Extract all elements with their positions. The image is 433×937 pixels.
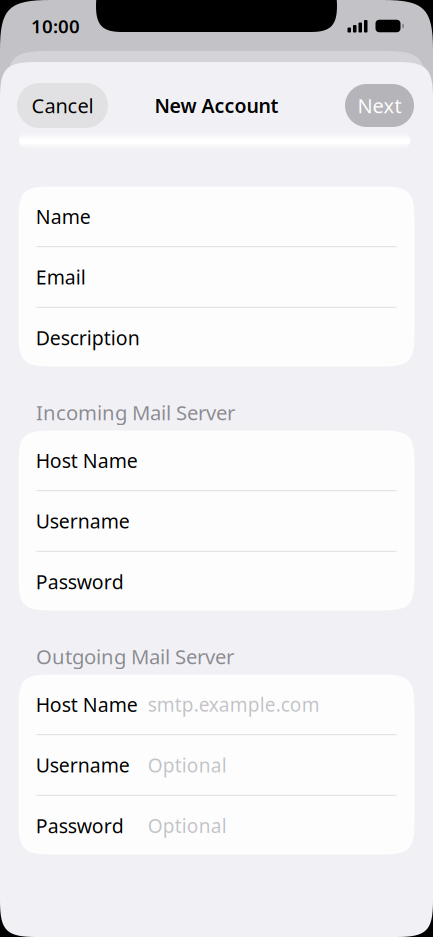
- button[interactable]: Password: [18, 552, 414, 611]
- button[interactable]: Username: [18, 735, 414, 795]
- staticText: Password: [36, 568, 124, 595]
- staticText: Incoming Mail Server: [36, 399, 235, 426]
- staticText: Optional: [148, 752, 227, 778]
- staticText: Optional: [148, 813, 227, 839]
- staticText: Cancel: [31, 92, 93, 119]
- staticText: New Account: [154, 92, 278, 119]
- staticText: Outgoing Mail Server: [36, 643, 234, 670]
- staticText: 10:00: [31, 13, 80, 39]
- button[interactable]: Email: [18, 247, 414, 307]
- button[interactable]: Next: [345, 84, 414, 127]
- staticText: Name: [36, 203, 91, 230]
- staticText: Username: [36, 508, 130, 534]
- button[interactable]: Description: [18, 308, 414, 367]
- button[interactable]: Cancel: [17, 83, 108, 128]
- button[interactable]: Host Name: [18, 674, 414, 734]
- staticText: smtp.example.com: [148, 691, 320, 717]
- staticText: Password: [36, 812, 124, 839]
- staticText: Description: [36, 324, 140, 351]
- staticText: Username: [36, 752, 130, 778]
- staticText: Host Name: [36, 691, 138, 718]
- button[interactable]: Password: [18, 796, 414, 855]
- staticText: Host Name: [36, 447, 138, 474]
- staticText: Next: [357, 92, 401, 119]
- button[interactable]: Host Name: [18, 430, 414, 490]
- button[interactable]: Username: [18, 491, 414, 551]
- button[interactable]: Name: [18, 186, 414, 246]
- staticText: Email: [36, 264, 86, 290]
